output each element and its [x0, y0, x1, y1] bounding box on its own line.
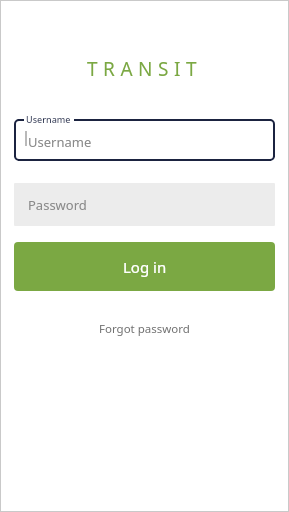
- staticText: Username: [26, 113, 71, 125]
- staticText: TRANSIT: [0, 56, 289, 82]
- button[interactable]: Username: [14, 113, 275, 161]
- staticText: Password: [28, 196, 87, 214]
- button[interactable]: Forgot password: [91, 318, 198, 340]
- button[interactable]: Password: [14, 183, 275, 226]
- button[interactable]: Log in: [14, 242, 275, 291]
- staticText: Username: [28, 133, 92, 151]
- staticText: Forgot password: [99, 321, 190, 337]
- staticText: Log in: [123, 257, 167, 277]
